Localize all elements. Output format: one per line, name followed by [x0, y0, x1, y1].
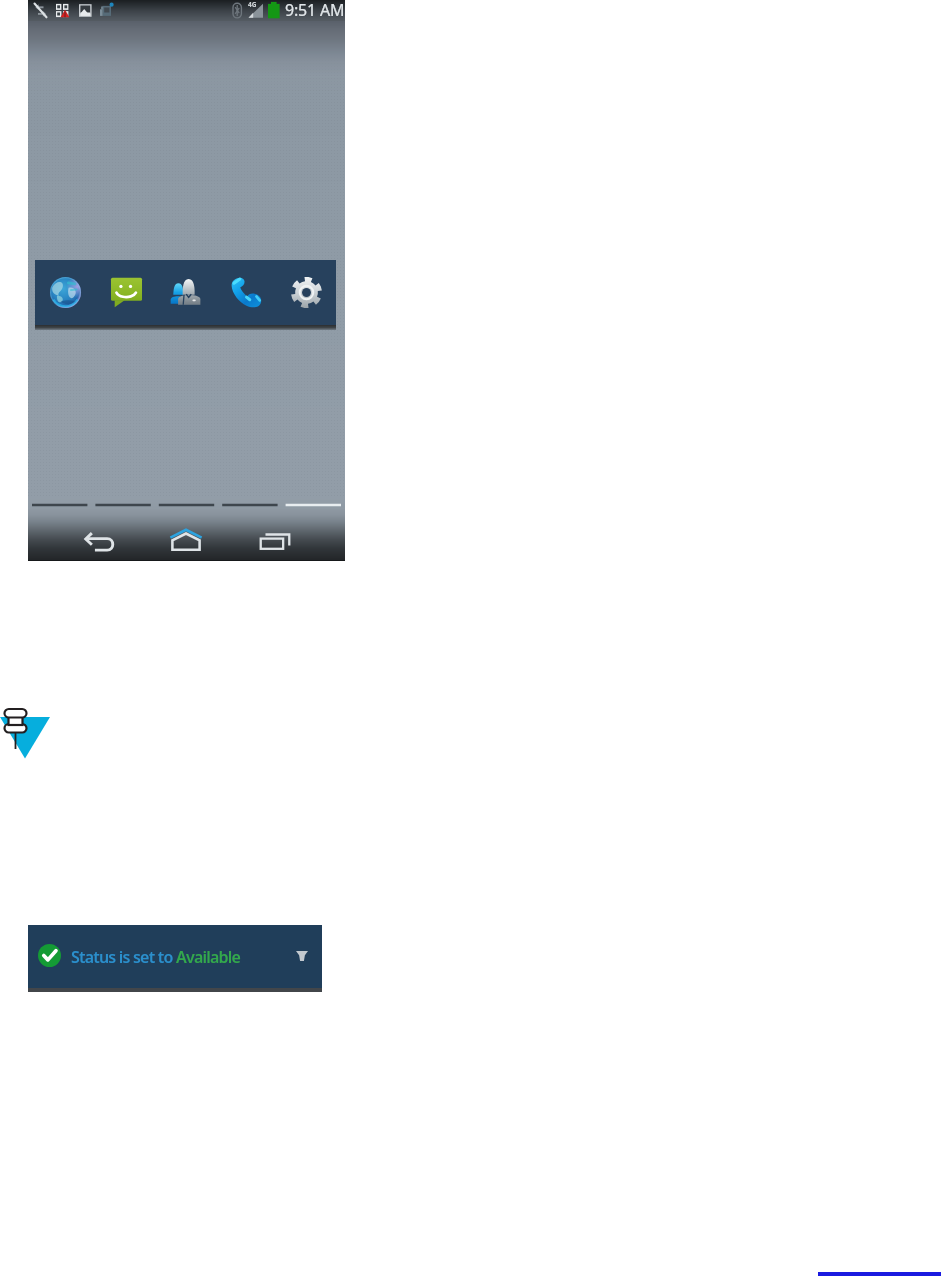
button[interactable]: Settings	[276, 260, 336, 326]
button[interactable]: Back	[71, 523, 127, 561]
button[interactable]: Home	[158, 523, 214, 561]
button[interactable]: People	[156, 260, 216, 326]
staticText: Status is set to	[71, 946, 176, 968]
button[interactable]: Messaging	[96, 260, 156, 326]
button[interactable]: Phone	[216, 260, 276, 326]
staticText: Available	[176, 946, 240, 968]
button[interactable]: Recent apps	[247, 523, 303, 561]
staticText: 4G	[248, 0, 257, 9]
button[interactable]: Browser	[35, 260, 96, 326]
staticText: 9:51 AM	[285, 0, 345, 20]
button[interactable]: Status is set to	[28, 925, 322, 992]
